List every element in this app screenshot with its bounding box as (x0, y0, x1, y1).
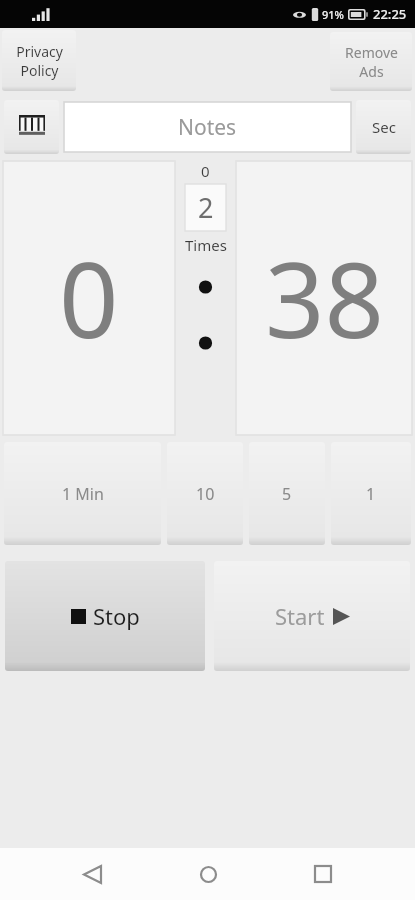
staticText: Sec (372, 117, 396, 137)
button[interactable]: Privacy Policy (2, 30, 76, 91)
button[interactable]: 0 (3, 161, 175, 435)
button[interactable]: Notes (64, 102, 351, 152)
staticText: 1 (366, 483, 376, 505)
staticText: 22:25 (373, 5, 407, 23)
button[interactable]: Sec (356, 100, 411, 154)
button[interactable]: Piano keyboard (4, 100, 59, 154)
staticText: 0 (59, 227, 119, 369)
button[interactable]: 38 (236, 161, 412, 435)
button[interactable]: 5 (249, 442, 325, 545)
staticText: Privacy Policy (16, 42, 63, 80)
button[interactable]: Recents (299, 850, 347, 898)
staticText: Remove Ads (345, 43, 398, 81)
button[interactable]: 10 (167, 442, 243, 545)
button[interactable]: 2 (185, 184, 226, 231)
staticText: 2 (198, 189, 214, 226)
button[interactable]: 1 (331, 442, 411, 545)
staticText: 10 (196, 483, 215, 505)
staticText: 5 (282, 483, 292, 505)
button[interactable]: Back (68, 850, 116, 898)
staticText: Notes (178, 113, 237, 142)
button[interactable]: Home (184, 850, 232, 898)
staticText: Start (275, 601, 325, 631)
staticText: Stop (93, 601, 140, 631)
button[interactable]: 1 Min (4, 442, 161, 545)
button[interactable]: Stop (5, 561, 205, 671)
button[interactable]: Start (214, 561, 410, 671)
button[interactable]: Remove Ads (330, 32, 412, 91)
staticText: 38 (265, 227, 384, 369)
staticText: 0 (201, 161, 210, 181)
staticText: Times (185, 235, 227, 255)
staticText: 1 Min (62, 483, 104, 505)
staticText: 91% (322, 7, 344, 22)
